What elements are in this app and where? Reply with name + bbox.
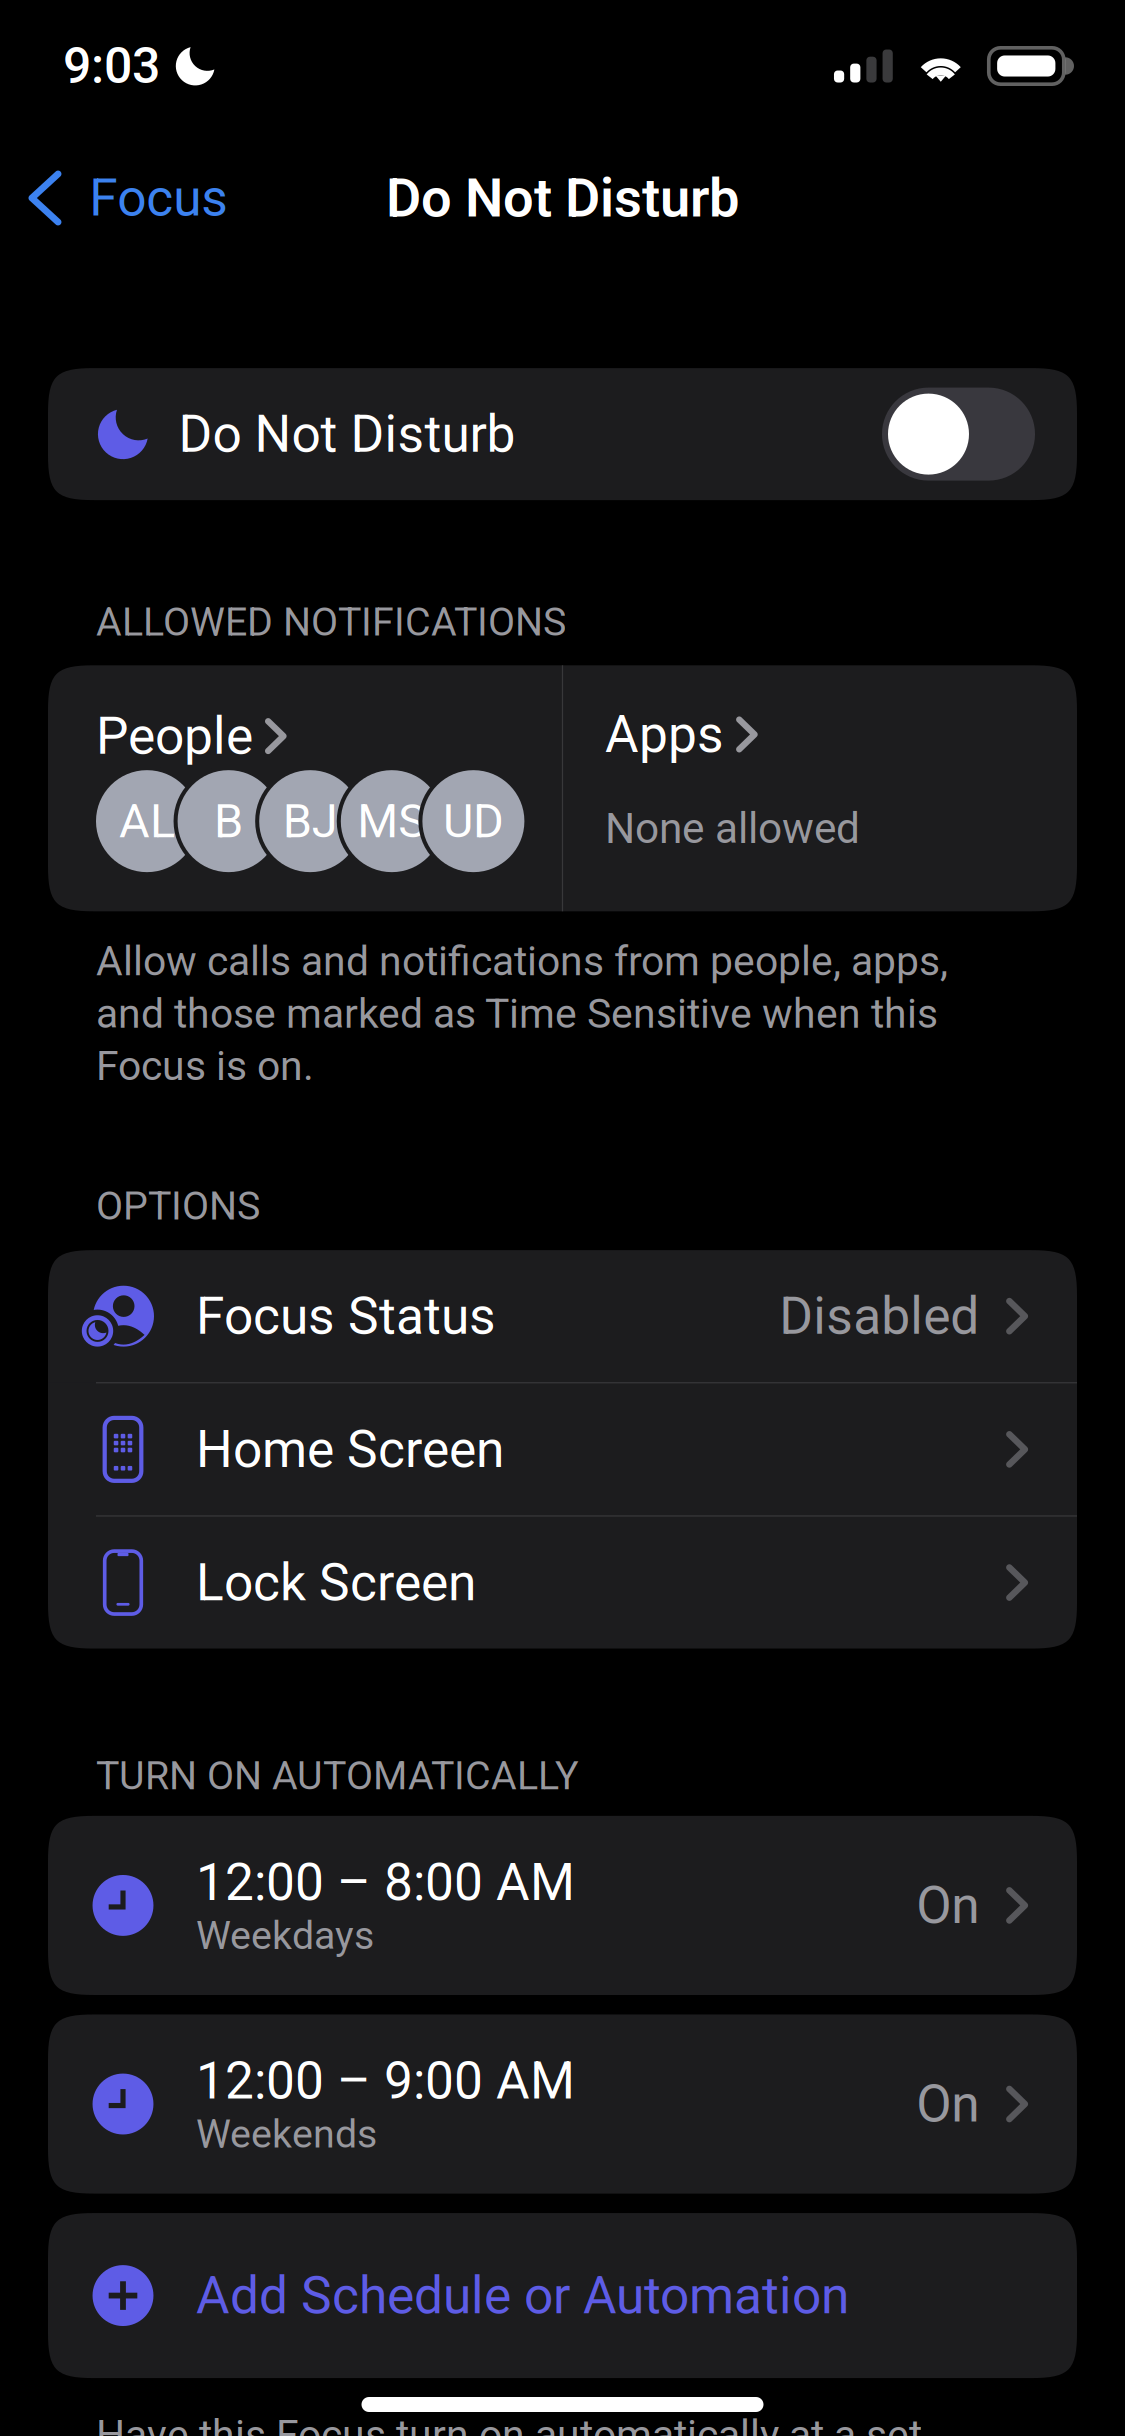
staticText: Add Schedule or Automation — [196, 2265, 849, 2326]
staticText: None allowed — [605, 804, 860, 853]
staticText: Weekends — [196, 2111, 377, 2157]
staticText: Allow calls and notifications from peopl… — [96, 937, 948, 1090]
staticText: 9:03 — [63, 37, 160, 95]
button[interactable]: Focus — [3, 132, 252, 264]
staticText: Do Not Disturb — [386, 166, 739, 230]
staticText: ALLOWED NOTIFICATIONS — [96, 599, 566, 645]
staticText: Disabled — [779, 1286, 979, 1346]
staticText: On — [916, 1875, 979, 1936]
staticText: Weekdays — [196, 1912, 374, 1959]
staticText: AL — [119, 794, 175, 849]
staticText: Home Screen — [196, 1419, 504, 1479]
staticText: On — [916, 2074, 979, 2134]
staticText: TURN ON AUTOMATICALLY — [96, 1753, 579, 1799]
staticText: OPTIONS — [96, 1183, 260, 1229]
button[interactable]: Apps — [563, 665, 1077, 911]
staticText: Focus — [89, 168, 228, 228]
button[interactable]: Lock Screen — [48, 1517, 1077, 1649]
button[interactable]: Add Schedule or Automation — [0, 2213, 1125, 2378]
button[interactable]: 12:00 – 8:00 AM — [0, 1816, 1125, 1995]
staticText: UD — [443, 794, 504, 849]
button[interactable]: Home Screen — [48, 1383, 1077, 1515]
staticText: Lock Screen — [196, 1552, 476, 1613]
staticText: B — [214, 794, 243, 849]
button[interactable]: Do Not Disturb — [882, 388, 1035, 481]
staticText: 12:00 – 8:00 AM — [196, 1852, 575, 1912]
staticText: 12:00 – 9:00 AM — [196, 2051, 575, 2111]
staticText: MS — [357, 794, 426, 849]
staticText: BJ — [283, 794, 338, 849]
staticText: Apps — [605, 704, 724, 765]
staticText: Focus Status — [196, 1286, 496, 1346]
staticText: Do Not Disturb — [178, 404, 515, 464]
button[interactable]: People — [48, 665, 562, 911]
staticText: Have this Focus turn on automatically at… — [96, 2411, 922, 2436]
staticText: People — [96, 706, 253, 766]
button[interactable]: Focus Status — [48, 1250, 1077, 1382]
button[interactable]: 12:00 – 9:00 AM — [0, 2014, 1125, 2194]
